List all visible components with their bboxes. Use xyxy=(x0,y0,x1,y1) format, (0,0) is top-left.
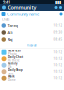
button[interactable]: Daily Shop xyxy=(0,68,64,75)
staticText: 10:12 xyxy=(53,50,62,54)
button[interactable]: Work xyxy=(0,75,64,81)
staticText: ▮▮▮ xyxy=(55,0,61,4)
staticText: 9:41 xyxy=(3,0,10,5)
staticText: Sure xyxy=(8,72,14,75)
staticText: 10:12 xyxy=(53,76,62,80)
button[interactable]: New Year xyxy=(0,49,64,55)
staticText: Done xyxy=(8,78,16,82)
staticText: Photo xyxy=(8,52,17,56)
staticText: Tareq xyxy=(7,23,17,28)
staticText: 09:30 xyxy=(53,31,62,34)
staticText: Hi there xyxy=(8,59,20,62)
staticText: 10:12 xyxy=(53,63,62,67)
staticText: 10:12 xyxy=(53,24,62,27)
staticText: 08:45 xyxy=(53,38,62,41)
staticText: Community name xyxy=(7,11,39,17)
staticText: Chats xyxy=(2,18,9,21)
staticText: Raj xyxy=(7,37,12,42)
staticText: Family xyxy=(8,62,17,65)
button[interactable]: View all xyxy=(0,43,64,48)
staticText: Community xyxy=(7,4,36,11)
button[interactable]: Ali xyxy=(0,29,64,36)
staticText: 10:12 xyxy=(53,70,62,73)
staticText: Work xyxy=(8,75,15,78)
button[interactable]: Raj xyxy=(0,36,64,43)
staticText: 10:12 xyxy=(53,57,62,60)
staticText: Ali xyxy=(7,30,12,35)
staticText: View all xyxy=(27,44,37,47)
button[interactable]: Family xyxy=(0,62,64,68)
staticText: Daily Shop xyxy=(8,68,23,72)
staticText: New Year xyxy=(8,49,21,52)
button[interactable]: Daily Chat xyxy=(0,55,64,62)
button[interactable]: Tareq xyxy=(0,22,64,29)
staticText: Daily Chat xyxy=(8,55,23,59)
staticText: Ok xyxy=(8,65,11,69)
